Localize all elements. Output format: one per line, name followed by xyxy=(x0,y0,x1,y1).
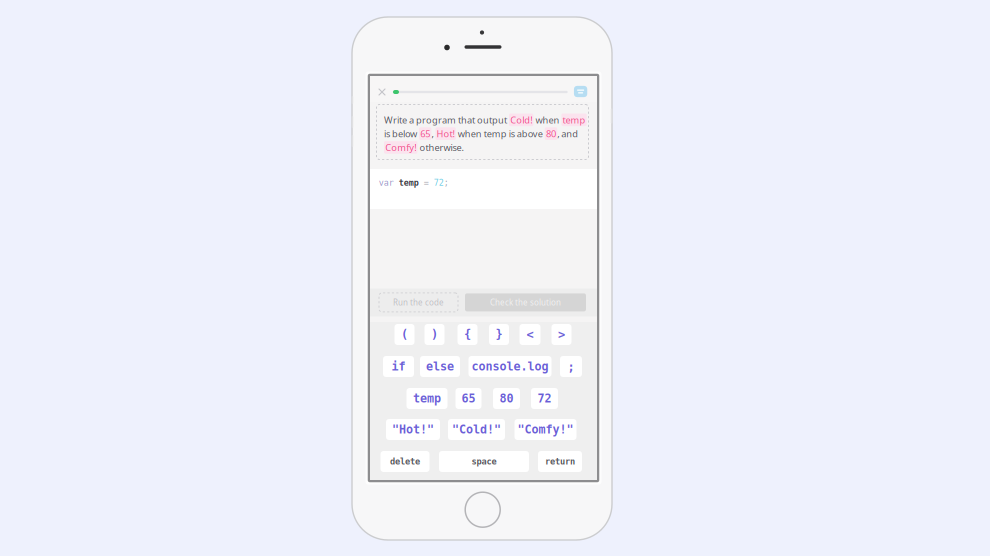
staticText: "Comfy!" xyxy=(517,423,573,436)
button[interactable]: 65 xyxy=(455,388,481,409)
staticText: 72 xyxy=(537,392,551,405)
button[interactable]: ( xyxy=(394,324,414,345)
button[interactable]: return xyxy=(538,451,582,472)
staticText: temp xyxy=(399,178,419,188)
staticText: Run the code xyxy=(393,297,444,308)
staticText: 65 xyxy=(420,127,430,140)
button[interactable]: Check the solution xyxy=(465,293,586,311)
staticText: ; xyxy=(444,178,449,188)
staticText: > xyxy=(558,327,565,341)
staticText: when xyxy=(533,113,561,126)
staticText: Cold! xyxy=(510,113,532,126)
button[interactable]: delete xyxy=(380,451,429,472)
staticText: Check the solution xyxy=(490,297,561,308)
button[interactable]: 72 xyxy=(531,388,558,409)
staticText: return xyxy=(545,456,575,467)
staticText: 65 xyxy=(461,392,475,405)
staticText: Comfy! xyxy=(385,141,416,154)
button[interactable]: else xyxy=(420,356,460,377)
staticText: var xyxy=(379,178,399,188)
staticText: 80 xyxy=(499,392,513,405)
button[interactable]: > xyxy=(551,324,571,345)
button[interactable]: Hint xyxy=(574,86,587,97)
button[interactable]: console.log xyxy=(468,356,551,377)
staticText: Hot! xyxy=(437,127,455,140)
staticText: "Cold!" xyxy=(452,423,501,436)
button[interactable]: Run the code xyxy=(379,293,458,312)
staticText: console.log xyxy=(471,360,548,373)
button[interactable]: if xyxy=(383,356,414,377)
staticText: Write a program that output xyxy=(384,113,509,126)
staticText: if xyxy=(391,360,405,373)
staticText: ( xyxy=(401,327,408,341)
staticText: is below xyxy=(384,127,419,140)
staticText: = xyxy=(419,178,434,188)
staticText: < xyxy=(526,327,533,341)
button[interactable]: "Hot!" xyxy=(386,419,440,440)
button[interactable]: Close xyxy=(375,85,389,99)
staticText: , xyxy=(431,127,435,140)
staticText: } xyxy=(495,327,502,341)
staticText: temp xyxy=(563,113,586,126)
button[interactable]: "Comfy!" xyxy=(514,419,576,440)
staticText: otherwise. xyxy=(417,141,463,154)
staticText: ) xyxy=(431,327,438,341)
button[interactable]: ) xyxy=(424,324,444,345)
staticText: ; xyxy=(567,359,574,373)
staticText: "Hot!" xyxy=(392,423,434,436)
staticText: 80 xyxy=(546,127,556,140)
staticText: 72 xyxy=(434,178,444,188)
button[interactable]: { xyxy=(457,324,477,345)
button[interactable]: ; xyxy=(560,356,582,377)
button[interactable]: 80 xyxy=(493,388,520,409)
staticText: when temp is above xyxy=(456,127,545,140)
staticText: { xyxy=(464,327,471,341)
button[interactable]: space xyxy=(439,451,529,472)
staticText: temp xyxy=(413,392,441,405)
button[interactable]: "Cold!" xyxy=(448,419,505,440)
staticText: space xyxy=(471,456,496,467)
button[interactable]: } xyxy=(489,324,509,345)
button[interactable]: temp xyxy=(406,388,447,409)
staticText: delete xyxy=(390,456,420,467)
staticText: else xyxy=(426,360,454,373)
staticText: , and xyxy=(557,127,578,140)
button[interactable]: < xyxy=(519,324,540,345)
